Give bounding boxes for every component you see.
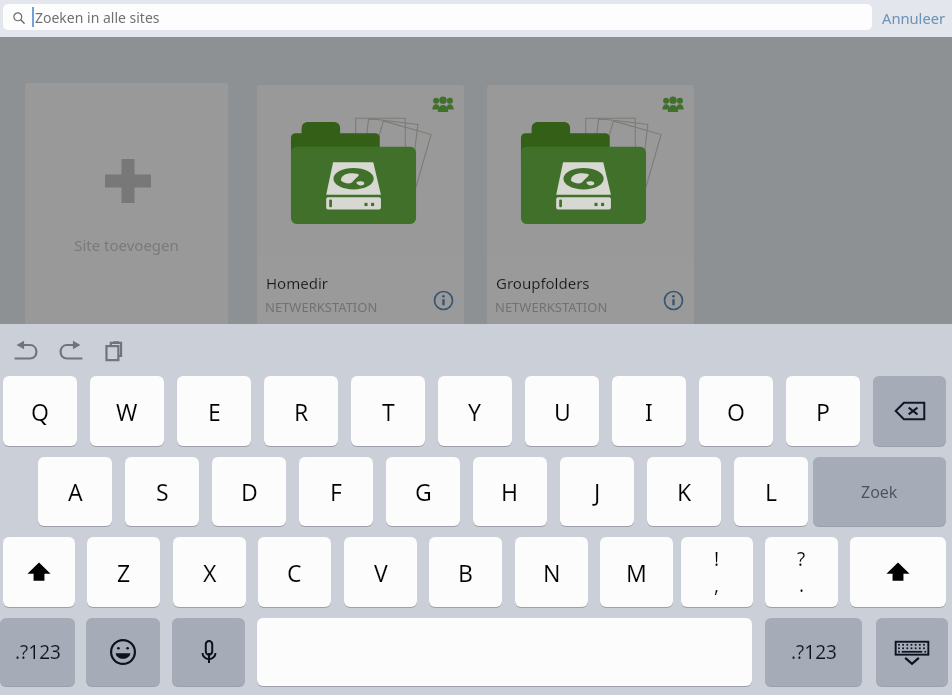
button[interactable]: Y xyxy=(438,376,512,446)
staticText: NETWERKSTATION xyxy=(265,298,378,316)
button[interactable]: N xyxy=(515,537,588,607)
staticText: Z xyxy=(117,557,131,588)
staticText: I xyxy=(645,396,653,427)
staticText: N xyxy=(543,557,561,588)
button[interactable]: L xyxy=(734,457,808,526)
button[interactable]: J xyxy=(560,457,634,526)
button[interactable]: Q xyxy=(3,376,77,446)
button[interactable]: G xyxy=(386,457,460,526)
button[interactable]: Groupfolders xyxy=(487,85,694,343)
button[interactable]: Homedir xyxy=(257,85,464,343)
button[interactable]: Backspace xyxy=(873,376,946,446)
staticText: A xyxy=(68,476,83,507)
button[interactable]: Z xyxy=(87,537,160,607)
staticText: F xyxy=(330,476,342,507)
staticText: ? xyxy=(797,546,806,572)
staticText: S xyxy=(156,476,169,507)
staticText: Zoek xyxy=(861,481,898,503)
staticText: E xyxy=(208,396,221,427)
button[interactable]: Shift xyxy=(850,537,946,607)
staticText: W xyxy=(116,396,138,427)
staticText: G xyxy=(415,476,432,507)
staticText: Groupfolders xyxy=(496,273,590,293)
button[interactable]: Hide keyboard xyxy=(876,618,948,686)
staticText: . xyxy=(799,572,805,598)
button[interactable]: Emoji xyxy=(86,618,160,686)
button[interactable]: Zoeken in alle sites xyxy=(3,4,872,30)
staticText: D xyxy=(241,476,258,507)
button[interactable]: .?123 xyxy=(0,618,75,686)
staticText: Homedir xyxy=(266,273,328,293)
staticText: T xyxy=(382,396,395,427)
staticText: L xyxy=(765,476,778,507)
staticText: R xyxy=(294,396,309,427)
button[interactable]: Annuleer xyxy=(882,8,946,28)
button[interactable]: B xyxy=(429,537,502,607)
staticText: .?123 xyxy=(791,639,837,665)
staticText: NETWERKSTATION xyxy=(495,298,608,316)
button[interactable]: V xyxy=(344,537,417,607)
button[interactable]: S xyxy=(125,457,199,526)
button[interactable]: ? xyxy=(765,537,838,607)
button[interactable]: Shift xyxy=(3,537,75,607)
button[interactable]: A xyxy=(38,457,112,526)
button[interactable]: Info xyxy=(433,290,454,311)
button[interactable]: Undo xyxy=(13,338,40,365)
button[interactable]: E xyxy=(177,376,251,446)
staticText: M xyxy=(626,557,647,588)
staticText: C xyxy=(287,557,302,588)
staticText: Q xyxy=(31,396,49,427)
staticText: Y xyxy=(468,396,482,427)
button[interactable]: T xyxy=(351,376,425,446)
button[interactable]: P xyxy=(786,376,860,446)
staticText: Site toevoegen xyxy=(25,235,228,255)
staticText: .?123 xyxy=(15,639,61,665)
staticText: P xyxy=(816,396,830,427)
button[interactable]: K xyxy=(647,457,721,526)
button[interactable]: Zoek xyxy=(813,457,946,526)
button[interactable]: F xyxy=(299,457,373,526)
button[interactable]: X xyxy=(173,537,246,607)
staticText: V xyxy=(374,557,388,588)
staticText: ! xyxy=(714,546,720,572)
staticText: J xyxy=(594,476,601,507)
button[interactable]: R xyxy=(264,376,338,446)
staticText: , xyxy=(714,572,720,598)
button[interactable]: Site toevoegen xyxy=(25,83,228,343)
button[interactable]: Info xyxy=(663,290,684,311)
button[interactable]: Paste xyxy=(100,338,127,365)
button[interactable]: ! xyxy=(681,537,753,607)
staticText: Zoeken in alle sites xyxy=(35,8,160,27)
staticText: X xyxy=(203,557,217,588)
button[interactable]: O xyxy=(699,376,773,446)
button[interactable]: Dictation xyxy=(172,618,245,686)
staticText: B xyxy=(458,557,473,588)
button[interactable]: Redo xyxy=(57,338,84,365)
button[interactable]: H xyxy=(473,457,547,526)
button[interactable]: M xyxy=(600,537,673,607)
button[interactable]: I xyxy=(612,376,686,446)
staticText: H xyxy=(501,476,519,507)
button[interactable]: U xyxy=(525,376,599,446)
button[interactable]: W xyxy=(90,376,164,446)
staticText: U xyxy=(554,396,571,427)
button[interactable]: D xyxy=(212,457,286,526)
button[interactable]: .?123 xyxy=(765,618,862,686)
staticText: K xyxy=(677,476,692,507)
button[interactable]: C xyxy=(258,537,331,607)
staticText: O xyxy=(727,396,745,427)
